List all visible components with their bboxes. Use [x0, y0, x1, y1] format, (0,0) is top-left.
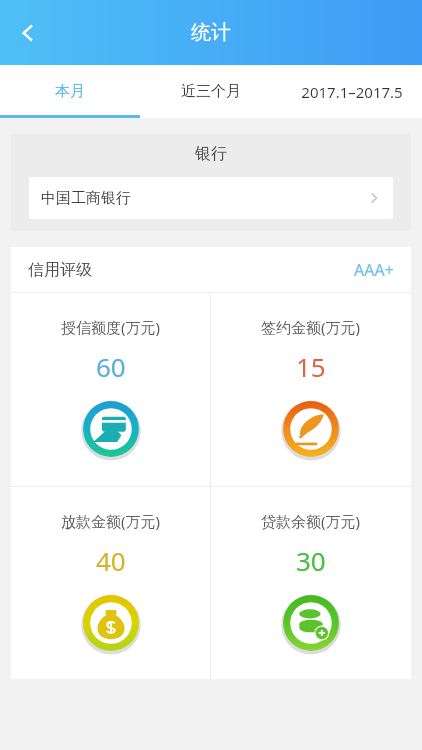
button[interactable]: 签约金额(万元): [211, 293, 411, 486]
button[interactable]: 信用评级: [11, 247, 411, 292]
staticText: 30: [296, 543, 326, 578]
button[interactable]: 授信额度(万元): [11, 293, 210, 486]
staticText: 贷款余额(万元): [261, 511, 361, 531]
button[interactable]: Back: [4, 9, 52, 57]
staticText: 2017.1–2017.5: [301, 82, 403, 102]
button[interactable]: 近三个月: [140, 65, 281, 118]
staticText: 40: [96, 543, 126, 578]
button[interactable]: 2017.1–2017.5: [281, 65, 422, 118]
staticText: 15: [296, 349, 326, 384]
staticText: 签约金额(万元): [261, 317, 361, 337]
staticText: 银行: [29, 144, 393, 164]
button[interactable]: 放款金额(万元): [11, 487, 210, 679]
staticText: 放款金额(万元): [61, 511, 161, 531]
staticText: 中国工商银行: [41, 189, 367, 208]
staticText: 统计: [191, 20, 231, 45]
staticText: 本月: [55, 82, 85, 101]
staticText: 信用评级: [28, 260, 354, 280]
button[interactable]: 贷款余额(万元): [211, 487, 411, 679]
button[interactable]: 本月: [0, 65, 140, 118]
staticText: 授信额度(万元): [61, 317, 161, 337]
staticText: 60: [96, 349, 126, 384]
staticText: AAA+: [354, 259, 394, 281]
button[interactable]: 中国工商银行: [29, 177, 393, 219]
staticText: 近三个月: [181, 82, 241, 101]
